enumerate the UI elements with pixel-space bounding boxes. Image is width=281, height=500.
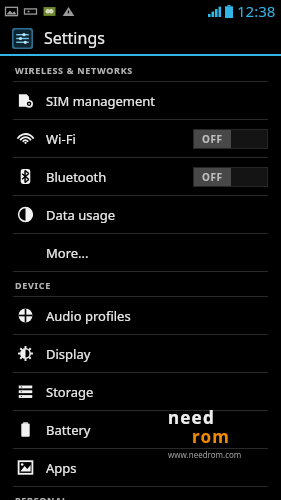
staticText: Battery — [46, 421, 91, 439]
staticText: OFF — [202, 132, 223, 146]
staticText: More... — [46, 244, 89, 262]
staticText: Wi-Fi — [46, 130, 76, 148]
button[interactable]: Toggle off — [193, 167, 268, 187]
staticText: need — [168, 406, 215, 429]
button[interactable]: Display — [0, 335, 281, 372]
staticText: WIRELESS & NETWORKS — [15, 64, 133, 76]
staticText: Audio profiles — [46, 307, 131, 325]
staticText: Display — [46, 345, 91, 363]
button[interactable]: More... — [0, 234, 281, 271]
button[interactable]: Toggle off — [193, 129, 268, 149]
button[interactable]: Storage — [0, 373, 281, 410]
staticText: Settings — [44, 27, 105, 49]
staticText: Storage — [46, 383, 94, 401]
staticText: SIM management — [46, 92, 156, 110]
button[interactable]: Wi-Fi — [0, 120, 281, 157]
button[interactable]: Apps — [0, 449, 281, 486]
staticText: Data usage — [46, 206, 116, 224]
staticText: Bluetooth — [46, 168, 107, 186]
staticText: rom — [192, 425, 231, 448]
staticText: www.needrom.com — [168, 449, 242, 460]
staticText: Apps — [46, 459, 77, 477]
staticText: 12:38 — [237, 1, 276, 21]
button[interactable]: SIM management — [0, 82, 281, 119]
staticText: PERSONAL — [15, 494, 68, 500]
button[interactable]: Audio profiles — [0, 297, 281, 334]
staticText: OFF — [202, 170, 223, 184]
button[interactable]: Bluetooth — [0, 158, 281, 195]
button[interactable]: Data usage — [0, 196, 281, 233]
button[interactable]: Settings — [0, 22, 281, 54]
staticText: DEVICE — [15, 279, 51, 291]
button[interactable]: Battery — [0, 411, 281, 448]
